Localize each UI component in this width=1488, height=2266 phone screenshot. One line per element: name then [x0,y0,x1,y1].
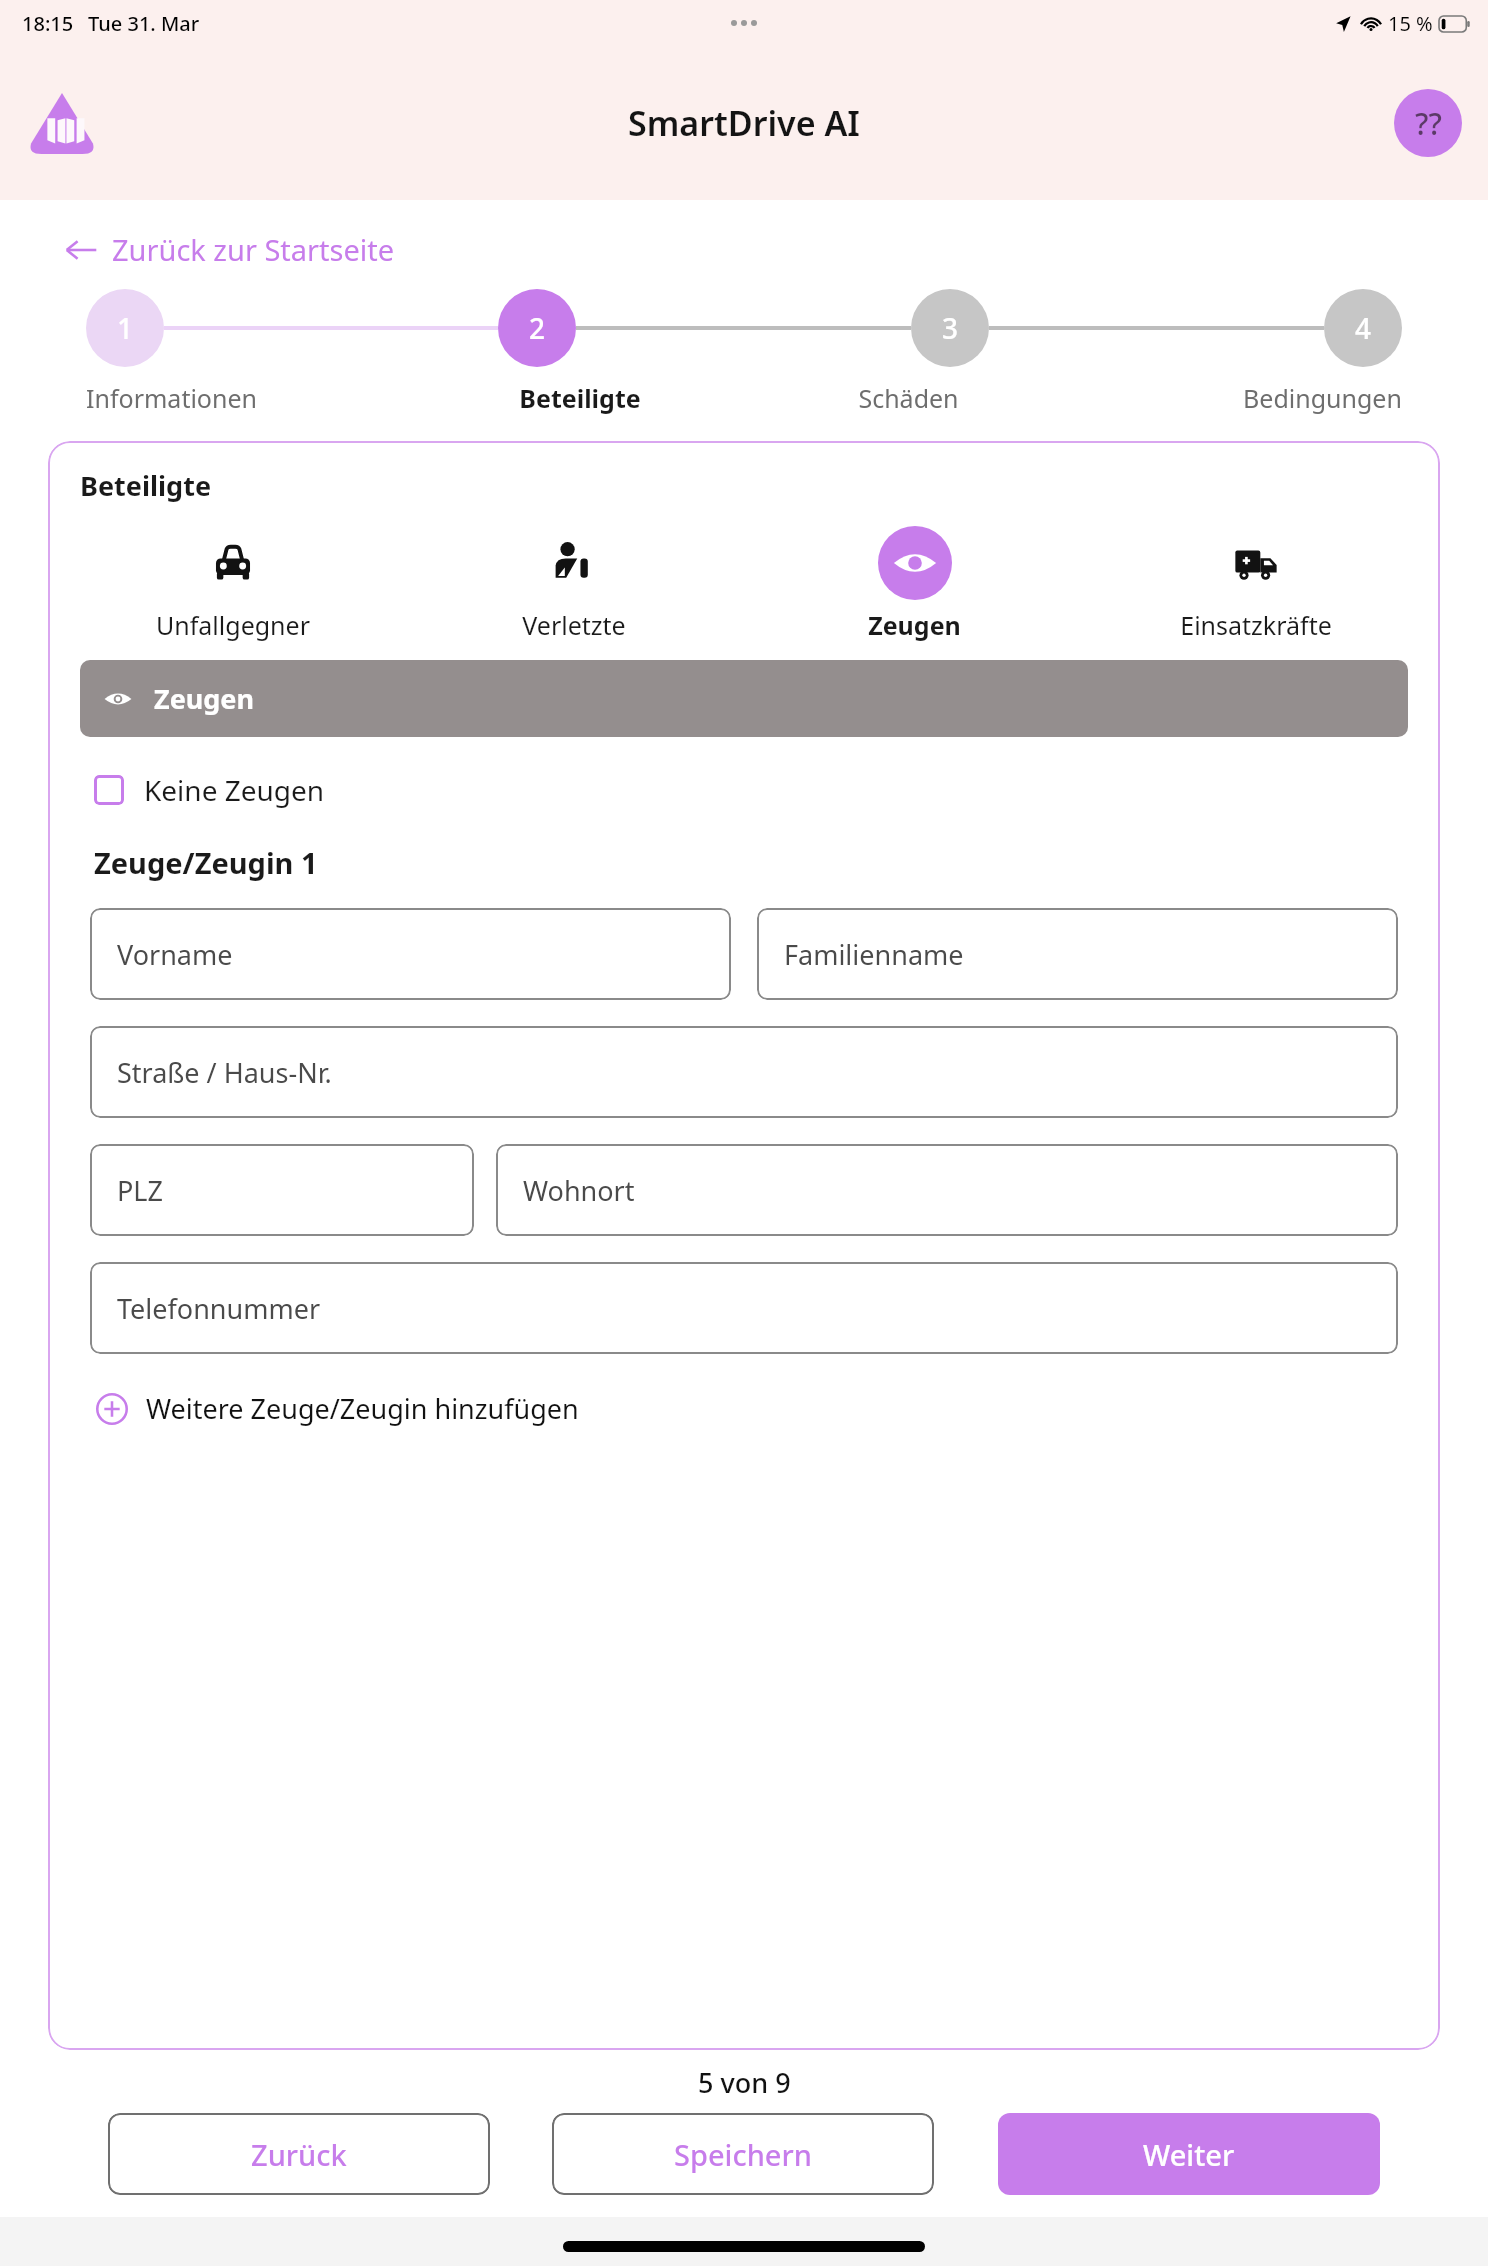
staticText: Telefonnummer [117,1290,321,1327]
button[interactable]: PLZ [90,1144,474,1236]
staticText: Weitere Zeuge/Zeugin hinzufügen [146,1390,579,1427]
staticText: Vorname [117,936,233,973]
button[interactable]: Weiter [998,2113,1380,2195]
staticText: Weiter [1143,2135,1235,2174]
button[interactable]: Speichern [552,2113,934,2195]
staticText: SmartDrive AI [628,100,860,146]
button[interactable]: Zurück [108,2113,490,2195]
staticText: ?? [1415,103,1442,144]
button[interactable]: Wohnort [496,1144,1398,1236]
button[interactable]: Zeugen [744,526,1085,642]
staticText: Wohnort [523,1172,635,1209]
staticText: Tue 31. Mar [88,10,200,37]
staticText: 3 [942,309,959,347]
button[interactable]: 1 [86,289,164,367]
staticText: Zeuge/Zeugin 1 [94,843,318,882]
button[interactable]: SmartDrive AI home [26,87,98,159]
button[interactable]: 4 [1324,289,1402,367]
button[interactable]: Vorname [90,908,731,1000]
staticText: Zeugen [154,680,255,717]
staticText: Schäden [858,381,959,415]
button[interactable]: Verletzte [403,526,744,642]
staticText: Zurück [251,2135,347,2174]
staticText: Verletzte [522,608,626,642]
staticText: Beteiligte [519,381,641,415]
button[interactable]: 3 [911,289,989,367]
button[interactable]: Zeugen [80,660,1408,737]
staticText: Einsatzkräfte [1180,608,1332,642]
staticText: Informationen [86,381,257,415]
staticText: Unfallgegner [156,608,310,642]
button[interactable]: Telefonnummer [90,1262,1398,1354]
staticText: 5 von 9 [698,2064,791,2101]
button[interactable]: Straße / Haus-Nr. [90,1026,1398,1118]
button[interactable]: Familienname [757,908,1398,1000]
button[interactable]: Einsatzkräfte [1085,526,1426,642]
staticText: 4 [1355,309,1372,347]
staticText: Beteiligte [80,467,212,504]
staticText: 18:15 [22,10,74,37]
staticText: Zeugen [868,608,961,642]
button[interactable]: Zurück zur Startseite [62,224,397,275]
button[interactable]: Help [1394,89,1462,157]
staticText: Bedingungen [1243,381,1402,415]
staticText: PLZ [117,1172,163,1209]
button[interactable]: Keine Zeugen [90,767,329,813]
button[interactable]: Unfallgegner [62,526,403,642]
staticText: Zurück zur Startseite [112,230,395,269]
button[interactable]: 2 [498,289,576,367]
staticText: 15 % [1388,10,1433,37]
staticText: 2 [529,309,546,347]
staticText: 1 [117,309,134,347]
staticText: Straße / Haus-Nr. [117,1054,332,1091]
staticText: Speichern [674,2135,812,2174]
button[interactable]: Weitere Zeuge/Zeugin hinzufügen [92,1384,583,1433]
staticText: Keine Zeugen [144,771,325,809]
staticText: Familienname [784,936,964,973]
